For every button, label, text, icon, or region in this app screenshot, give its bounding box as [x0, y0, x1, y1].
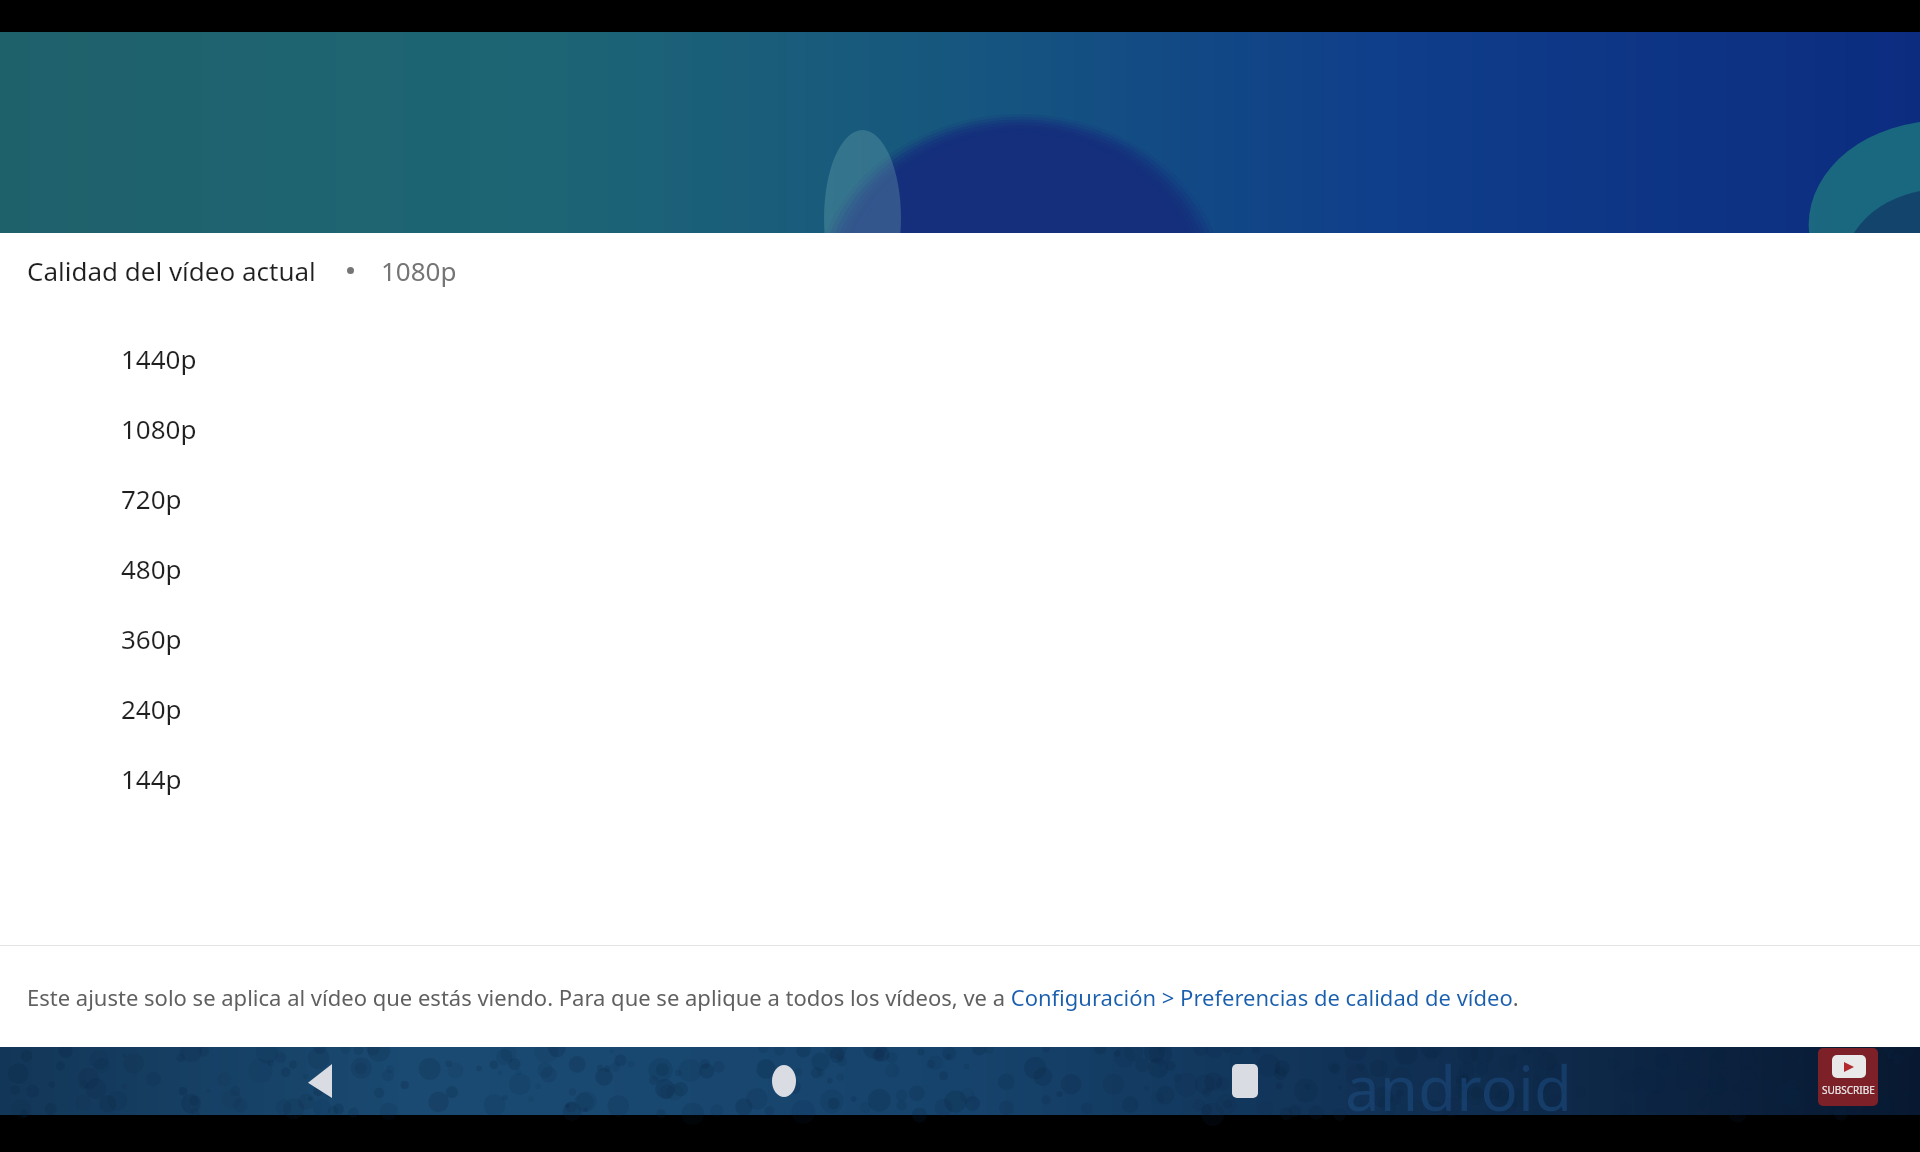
button[interactable]: Home — [752, 1047, 816, 1115]
staticText: 1080p — [381, 253, 457, 288]
button[interactable]: 1440p — [0, 323, 1920, 393]
button[interactable]: 240p — [0, 673, 1920, 743]
staticText: Calidad del vídeo actual — [27, 253, 316, 288]
button[interactable]: 144p — [0, 743, 1920, 813]
button[interactable]: 360p — [0, 603, 1920, 673]
button[interactable]: Back — [288, 1047, 352, 1115]
staticText: 720p — [121, 481, 182, 516]
button[interactable]: Recent apps — [1213, 1047, 1277, 1115]
staticText: 1440p — [121, 341, 197, 376]
staticText: 360p — [121, 621, 182, 656]
button[interactable]: 1080p — [0, 393, 1920, 463]
button[interactable]: Calidad del vídeo actual — [0, 233, 1920, 308]
staticText: Este ajuste solo se aplica al vídeo que … — [27, 982, 1519, 1012]
button[interactable]: 720p — [0, 463, 1920, 533]
button[interactable]: 480p — [0, 533, 1920, 603]
staticText: android — [1345, 1045, 1573, 1113]
staticText: 480p — [121, 551, 182, 586]
staticText: 144p — [121, 761, 182, 796]
staticText: 240p — [121, 691, 182, 726]
button[interactable]: Este ajuste solo se aplica al vídeo que … — [0, 946, 1920, 1047]
staticText: 1080p — [121, 411, 197, 446]
staticText: SUBSCRIBE — [1822, 1083, 1875, 1097]
button[interactable]: Subscribe — [1818, 1048, 1878, 1106]
